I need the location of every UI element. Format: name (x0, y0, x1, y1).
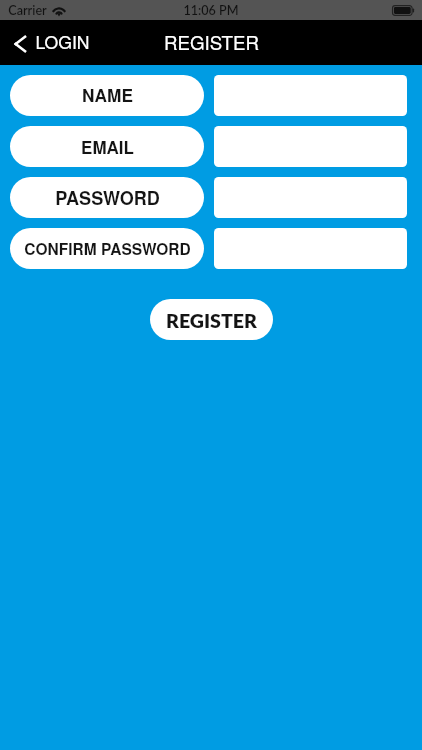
staticText: EMAIL (81, 135, 134, 159)
button[interactable]: LOGIN (10, 25, 94, 60)
button[interactable]: CONFIRM PASSWORD (10, 228, 204, 269)
button[interactable]: NAME input (214, 75, 407, 116)
button[interactable]: CONFIRM PASSWORD input (214, 228, 407, 269)
button[interactable]: REGISTER (150, 299, 273, 340)
staticText: NAME (82, 83, 133, 108)
button[interactable]: EMAIL (10, 126, 204, 167)
staticText: 11:06 PM (183, 3, 239, 18)
button[interactable]: PASSWORD (10, 177, 204, 218)
staticText: CONFIRM PASSWORD (24, 238, 191, 260)
staticText: REGISTER (166, 309, 257, 333)
staticText: PASSWORD (55, 185, 160, 211)
button[interactable]: EMAIL input (214, 126, 407, 167)
staticText: REGISTER (164, 29, 259, 56)
button[interactable]: PASSWORD input (214, 177, 407, 218)
button[interactable]: NAME (10, 75, 204, 116)
staticText: LOGIN (35, 29, 90, 54)
staticText: Carrier (8, 3, 47, 18)
